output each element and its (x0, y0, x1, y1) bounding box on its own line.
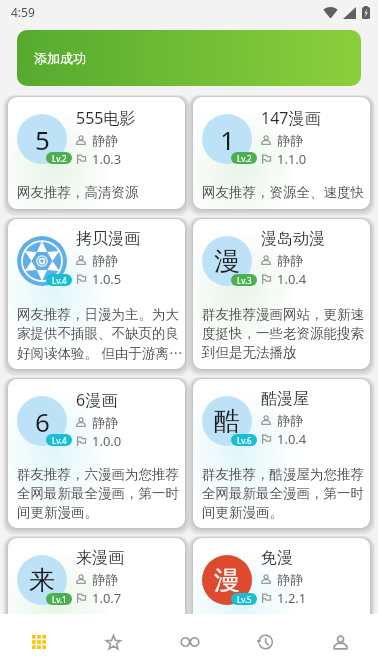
staticText: 1.2.1 (277, 589, 307, 607)
staticText: 静静 (92, 132, 118, 148)
staticText: 1 (220, 122, 235, 157)
button[interactable]: 6 (8, 379, 185, 528)
staticText: 群友推荐，六漫画为您推荐全网最新最全漫画，第一时间更新漫画。 (17, 466, 185, 521)
staticText: 147漫画 (261, 107, 321, 129)
button[interactable]: Favorites (76, 614, 151, 672)
button[interactable]: 漫 (193, 219, 370, 369)
staticText: 5 (35, 122, 50, 157)
button[interactable]: 1 (193, 97, 370, 209)
staticText: Lv.2 (237, 153, 252, 164)
staticText: 1.0.7 (92, 589, 122, 607)
staticText: 静静 (277, 571, 303, 587)
button[interactable]: Apps (1, 614, 76, 672)
staticText: 免漫 (261, 548, 293, 568)
staticText: Lv.3 (237, 275, 252, 286)
staticText: 555电影 (76, 107, 136, 129)
staticText: 群友推荐漫画网站，更新速度挺快，一些老资源能搜索到但是无法播放 (202, 306, 370, 361)
staticText: 1.0.4 (277, 270, 307, 288)
staticText: 静静 (92, 252, 118, 268)
staticText: 网友推荐，资源全、速度快 (202, 184, 364, 201)
staticText: 漫岛动漫 (261, 229, 325, 249)
staticText: 1.1.0 (277, 150, 307, 168)
staticText: 来 (29, 564, 55, 597)
button[interactable]: History (227, 614, 302, 672)
button[interactable]: 漫 (193, 538, 370, 672)
staticText: 网友推荐，日漫为主。为大家提供不插眼、不缺页的良好阅读体验。 但由于游离于灰色地… (17, 306, 185, 362)
staticText: 静静 (277, 132, 303, 148)
staticText: 6漫画 (76, 389, 118, 411)
staticText: 来漫画 (76, 548, 124, 568)
button[interactable]: 酷 (193, 379, 370, 528)
staticText: Lv.1 (52, 594, 67, 605)
button[interactable]: 来 (8, 538, 185, 672)
staticText: 静静 (92, 571, 118, 587)
staticText: 1.0.5 (92, 270, 122, 288)
staticText: 1.0.0 (92, 432, 122, 450)
button[interactable]: 添加成功 (17, 30, 361, 86)
staticText: 静静 (92, 414, 118, 430)
button[interactable]: Profile (303, 614, 378, 672)
staticText: 漫 (214, 245, 240, 278)
staticText: Lv.6 (237, 435, 252, 446)
staticText: 1.0.3 (92, 150, 122, 168)
staticText: 酷 (214, 405, 240, 438)
button[interactable]: Lv.4 (8, 219, 185, 369)
staticText: 4:59 (11, 4, 35, 20)
staticText: 静静 (277, 412, 303, 428)
staticText: Lv.5 (237, 594, 252, 605)
staticText: Lv.2 (52, 153, 67, 164)
button[interactable]: Discover (152, 614, 227, 672)
staticText: 1.0.4 (277, 430, 307, 448)
staticText: 网友推荐，高清资源 (17, 184, 139, 201)
staticText: 静静 (277, 252, 303, 268)
staticText: 6 (35, 404, 50, 439)
staticText: 添加成功 (34, 50, 86, 66)
button[interactable]: 5 (8, 97, 185, 209)
staticText: 拷贝漫画 (76, 229, 140, 249)
staticText: 酷漫屋 (261, 389, 309, 409)
staticText: 漫 (214, 564, 240, 597)
staticText: Lv.4 (52, 435, 67, 446)
staticText: Lv.4 (52, 275, 67, 286)
staticText: 群友推荐，酷漫屋为您推荐全网最新最全漫画，第一时间更新漫画。 (202, 466, 370, 521)
